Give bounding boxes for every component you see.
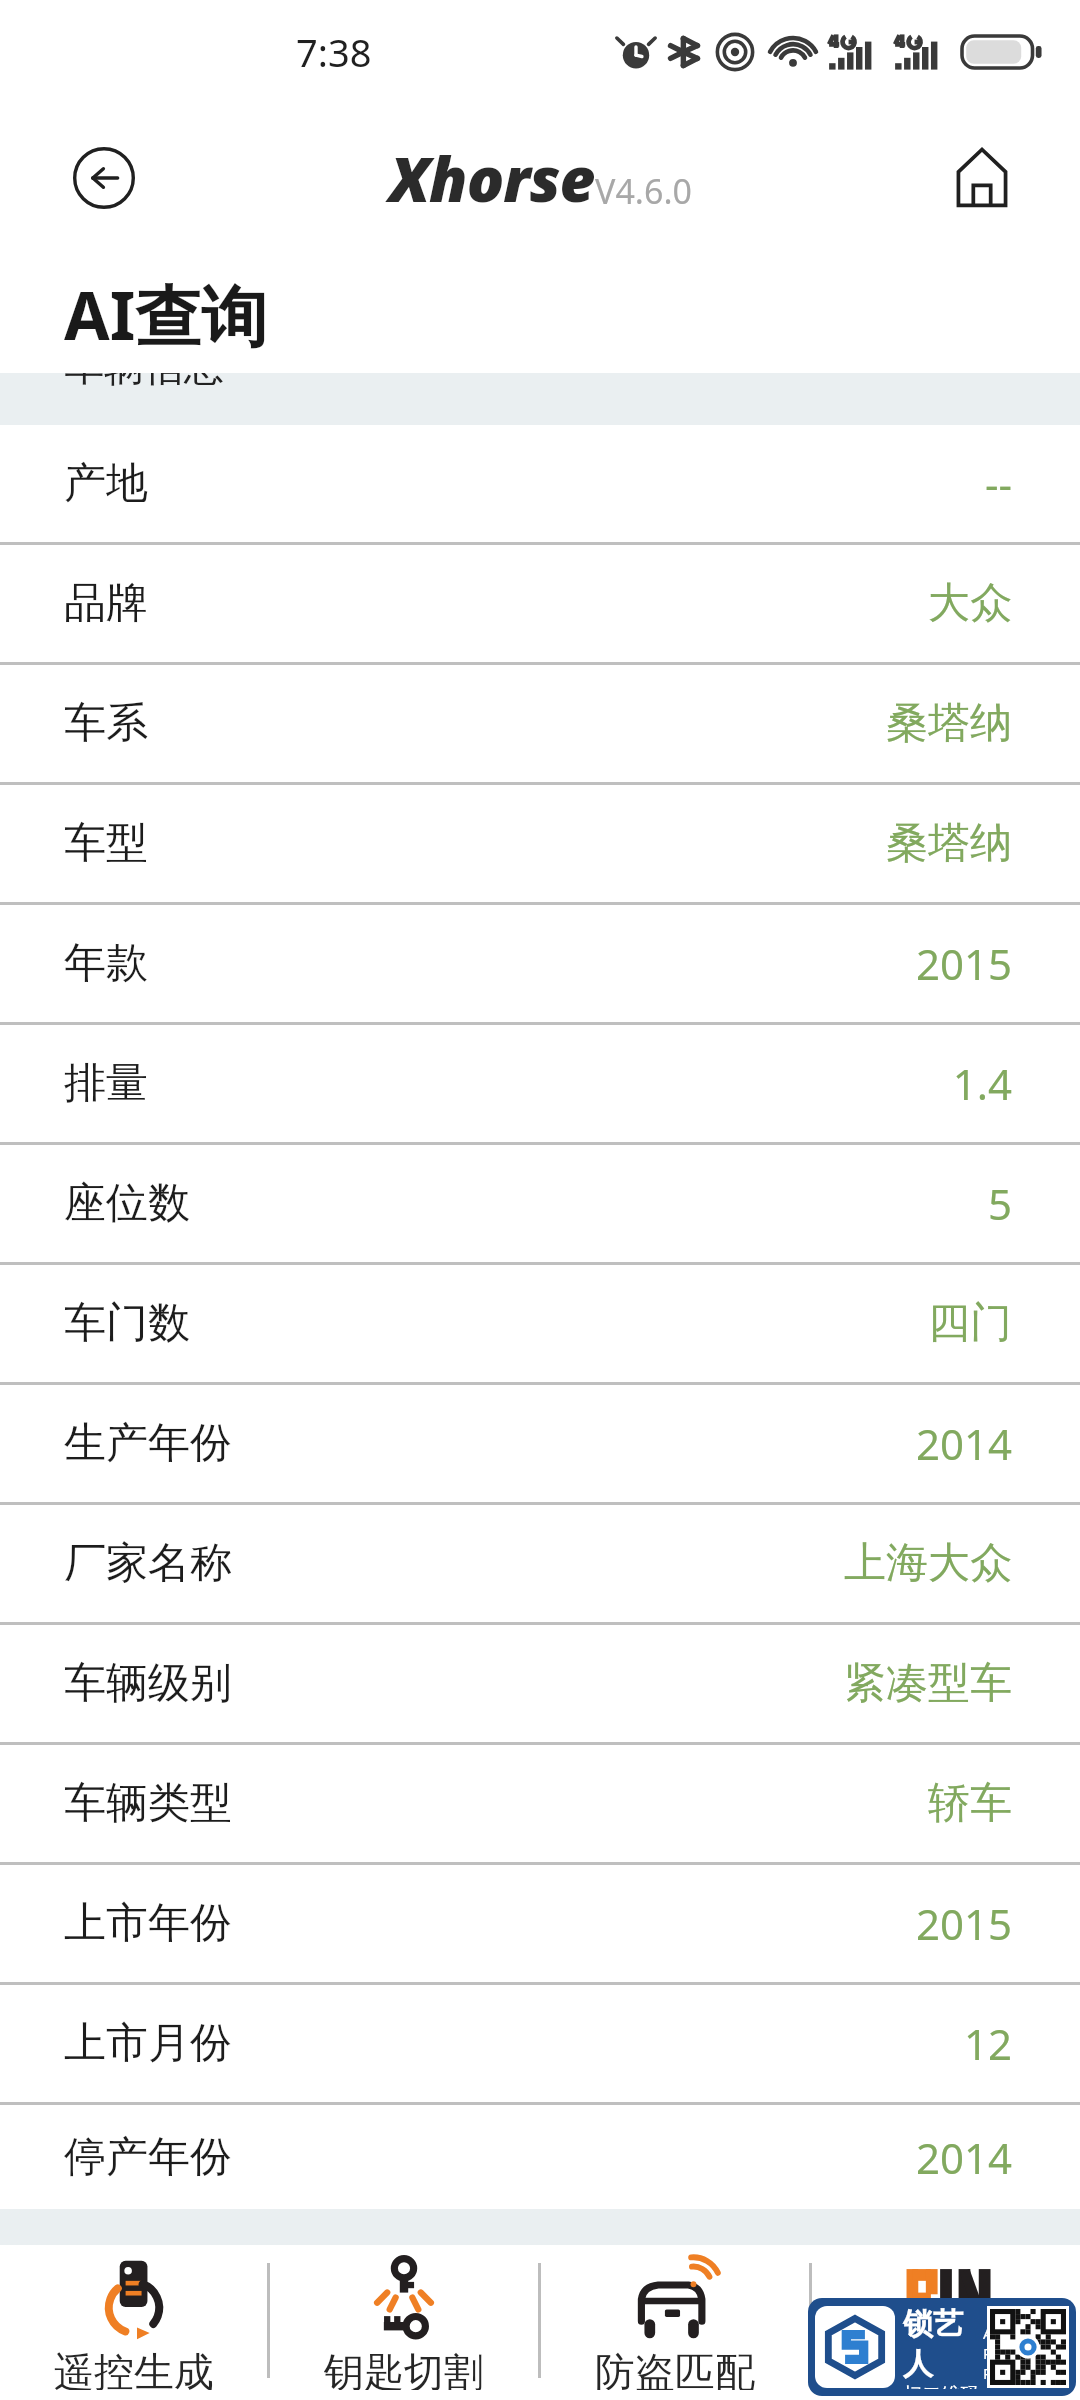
staticText: 车辆类型 <box>64 1777 232 1830</box>
staticText: 扫二维码安装 <box>903 2383 983 2389</box>
staticText: 7:38 <box>296 26 372 78</box>
staticText: 厂家名称 <box>64 1537 232 1590</box>
button[interactable]: 座位数 <box>0 1145 1080 1262</box>
staticText: -- <box>984 455 1012 512</box>
button[interactable]: 排量 <box>0 1025 1080 1142</box>
staticText: 产地 <box>64 457 148 510</box>
staticText: Xhorse <box>389 136 595 220</box>
staticText: 桑塔纳 <box>886 697 1012 750</box>
button[interactable] <box>812 2245 1080 2400</box>
button[interactable]: 生产年份 <box>0 1385 1080 1502</box>
button[interactable]: 车门数 <box>0 1265 1080 1382</box>
staticText: 1.4 <box>952 1055 1012 1112</box>
button[interactable]: 防盗匹配 <box>541 2245 809 2400</box>
button[interactable]: 年款 <box>0 905 1080 1022</box>
staticText: 车系 <box>64 697 148 750</box>
staticText: 防盗匹配 <box>595 2347 755 2390</box>
staticText: 2014 <box>915 1415 1012 1472</box>
staticText: 品牌 <box>64 577 148 630</box>
staticText: AI查询 <box>64 269 268 359</box>
staticText: 上海大众 <box>844 1537 1012 1590</box>
staticText: 生产年份 <box>64 1417 232 1470</box>
staticText: 轿车 <box>928 1777 1012 1830</box>
button[interactable]: 车型 <box>0 785 1080 902</box>
staticText: 车型 <box>64 817 148 870</box>
button[interactable]: 厂家名称 <box>0 1505 1080 1622</box>
staticText: 上市月份 <box>64 2017 232 2070</box>
staticText: V4.6.0 <box>595 168 692 214</box>
button[interactable]: 车辆类型 <box>0 1745 1080 1862</box>
staticText: 紧凑型车 <box>844 1657 1012 1710</box>
button[interactable]: 遥控生成 <box>0 2245 267 2400</box>
staticText: 大众 <box>928 577 1012 630</box>
button[interactable]: 停产年份 <box>0 2105 1080 2209</box>
button[interactable]: 品牌 <box>0 545 1080 662</box>
staticText: 12 <box>963 2015 1012 2072</box>
staticText: 2014 <box>915 2129 1012 2186</box>
button[interactable]: Scan QR to install app <box>808 2298 1076 2396</box>
staticText: 上市年份 <box>64 1897 232 1950</box>
staticText: 排量 <box>64 1057 148 1110</box>
staticText: 锁艺人 <box>903 2305 983 2383</box>
staticText: 车辆信息 <box>64 373 224 391</box>
button[interactable]: 车辆级别 <box>0 1625 1080 1742</box>
staticText: 车门数 <box>64 1297 190 1350</box>
staticText: 钥匙切割 <box>324 2347 484 2390</box>
staticText: 车辆级别 <box>64 1657 232 1710</box>
button[interactable]: 上市月份 <box>0 1985 1080 2102</box>
staticText: 桑塔纳 <box>886 817 1012 870</box>
button[interactable]: Home <box>940 136 1024 220</box>
staticText: 年款 <box>64 937 148 990</box>
staticText: 座位数 <box>64 1177 190 1230</box>
staticText: 2015 <box>915 935 1012 992</box>
button[interactable]: Back <box>62 136 146 220</box>
button[interactable]: 钥匙切割 <box>270 2245 538 2400</box>
staticText: 遥控生成 <box>54 2347 214 2390</box>
button[interactable]: 车系 <box>0 665 1080 782</box>
staticText: 2015 <box>915 1895 1012 1952</box>
staticText: 5 <box>987 1175 1012 1232</box>
button[interactable]: 产地 <box>0 425 1080 542</box>
button[interactable]: 上市年份 <box>0 1865 1080 1982</box>
staticText: 四门 <box>928 1297 1012 1350</box>
staticText: 停产年份 <box>64 2131 232 2184</box>
